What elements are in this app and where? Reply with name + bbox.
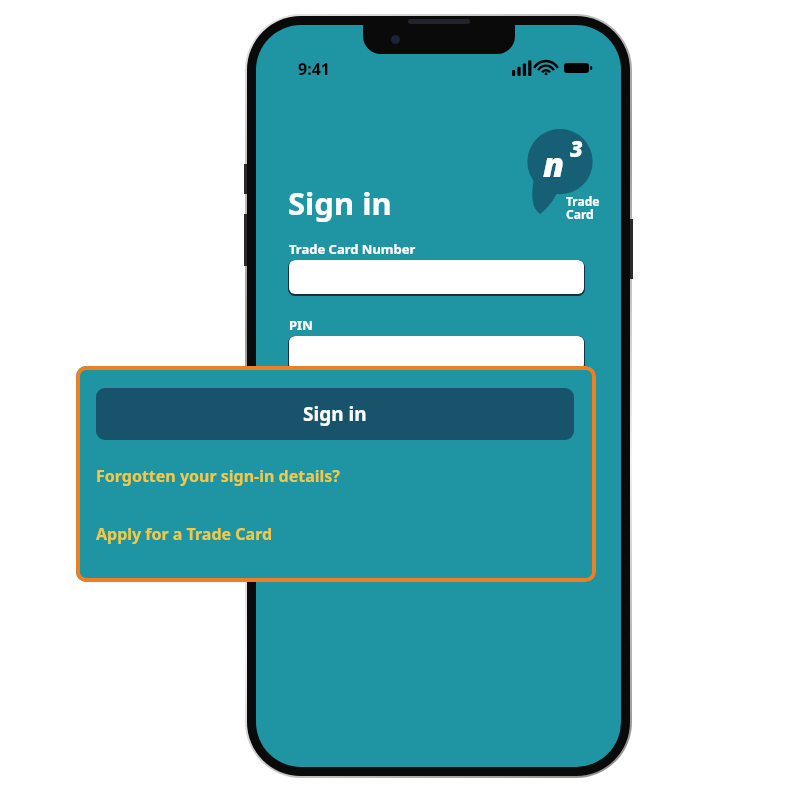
button[interactable]: Sign in [96,388,574,440]
staticText: PIN [289,316,313,334]
staticText: 9:41 [298,58,330,80]
button[interactable]: Text input field [288,260,585,296]
button[interactable]: Text input field [288,336,585,372]
button[interactable]: Apply for a Trade Card [96,518,311,550]
staticText: Trade Card Number [289,240,416,258]
staticText: n [543,141,565,187]
button[interactable]: Sign in [288,397,585,449]
staticText: Sign in [288,182,392,224]
staticText: 3 [570,133,583,163]
staticText: Sign in [303,401,367,427]
staticText: Forgotten your sign-in details? [96,465,340,487]
staticText: Trade Card [566,193,600,223]
staticText: Apply for a Trade Card [96,523,273,545]
button[interactable]: Forgotten your sign-in details? [96,460,356,492]
